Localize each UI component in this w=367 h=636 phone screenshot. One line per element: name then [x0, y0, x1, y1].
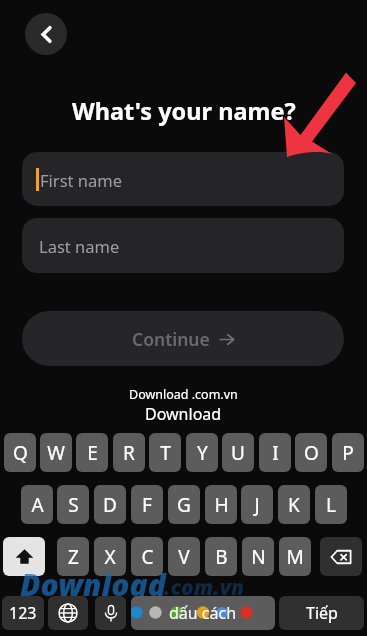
button[interactable]: K: [278, 485, 310, 524]
button[interactable]: Continue: [22, 311, 344, 366]
staticText: K: [288, 492, 300, 518]
button[interactable]: Backspace: [320, 537, 362, 576]
staticText: I: [272, 440, 279, 466]
staticText: What's your name?: [72, 95, 296, 127]
button[interactable]: Q: [4, 433, 36, 472]
staticText: Download .com.vn: [129, 386, 238, 403]
button[interactable]: F: [131, 485, 163, 524]
staticText: Y: [197, 440, 208, 466]
staticText: A: [31, 492, 44, 518]
staticText: Z: [68, 544, 79, 570]
staticText: O: [304, 440, 319, 466]
staticText: F: [142, 492, 152, 518]
button[interactable]: Y: [186, 433, 218, 472]
button[interactable]: P: [332, 433, 364, 472]
staticText: First name: [40, 169, 122, 191]
staticText: J: [254, 492, 260, 518]
staticText: Download: [145, 403, 222, 425]
staticText: S: [68, 492, 79, 518]
button[interactable]: L: [315, 485, 347, 524]
staticText: Last name: [39, 235, 120, 257]
button[interactable]: D: [94, 485, 126, 524]
staticText: G: [177, 492, 191, 518]
button[interactable]: B: [205, 537, 237, 576]
button[interactable]: C: [131, 537, 163, 576]
staticText: M: [286, 544, 304, 570]
button[interactable]: R: [113, 433, 145, 472]
button[interactable]: Last name: [22, 218, 344, 273]
staticText: P: [342, 440, 354, 466]
button[interactable]: Change language: [48, 596, 88, 630]
staticText: E: [87, 440, 98, 466]
button[interactable]: N: [242, 537, 274, 576]
staticText: L: [326, 492, 336, 518]
button[interactable]: M: [279, 537, 311, 576]
button[interactable]: Back: [25, 13, 67, 55]
button[interactable]: T: [149, 433, 181, 472]
button[interactable]: E: [76, 433, 108, 472]
button[interactable]: dấu cách: [131, 596, 275, 630]
button[interactable]: I: [259, 433, 291, 472]
button[interactable]: S: [57, 485, 89, 524]
staticText: T: [160, 440, 171, 466]
button[interactable]: J: [241, 485, 273, 524]
button[interactable]: Shift: [3, 537, 45, 576]
button[interactable]: U: [222, 433, 254, 472]
staticText: D: [103, 492, 117, 518]
button[interactable]: H: [205, 485, 237, 524]
button[interactable]: Voice input: [95, 596, 126, 630]
staticText: C: [141, 544, 154, 570]
button[interactable]: G: [168, 485, 200, 524]
staticText: dấu cách: [169, 602, 237, 624]
button[interactable]: V: [168, 537, 200, 576]
staticText: X: [104, 544, 116, 570]
button[interactable]: First name: [22, 152, 344, 206]
staticText: Q: [13, 440, 28, 466]
staticText: W: [47, 440, 65, 466]
button[interactable]: X: [94, 537, 126, 576]
staticText: Download: [20, 564, 166, 605]
staticText: .com.vn: [164, 573, 245, 602]
staticText: B: [215, 544, 228, 570]
staticText: U: [231, 440, 245, 466]
button[interactable]: W: [40, 433, 72, 472]
staticText: Tiếp: [306, 602, 338, 624]
button[interactable]: A: [21, 485, 53, 524]
staticText: R: [123, 440, 135, 466]
button[interactable]: 123: [2, 596, 44, 630]
staticText: Continue: [132, 327, 210, 351]
staticText: N: [251, 544, 266, 570]
button[interactable]: Tiếp: [279, 596, 364, 630]
button[interactable]: O: [295, 433, 327, 472]
staticText: H: [214, 492, 229, 518]
staticText: 123: [9, 602, 37, 624]
staticText: V: [178, 544, 190, 570]
button[interactable]: Z: [57, 537, 89, 576]
